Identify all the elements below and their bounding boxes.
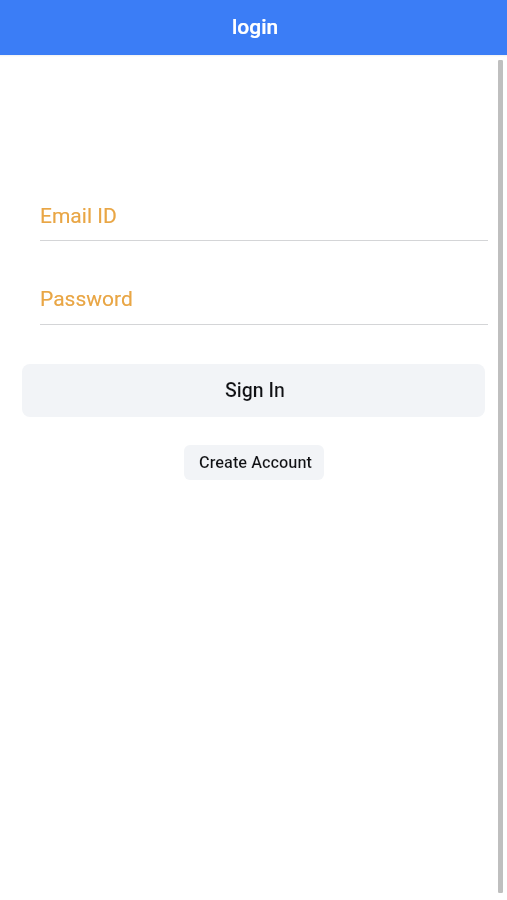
button[interactable]: Create Account bbox=[184, 445, 324, 480]
staticText: Password bbox=[40, 287, 133, 312]
staticText: Email ID bbox=[40, 204, 117, 229]
button[interactable]: Email ID input field bbox=[40, 204, 488, 241]
button[interactable]: Sign In bbox=[22, 364, 485, 417]
staticText: Sign In bbox=[225, 379, 285, 402]
staticText: Create Account bbox=[199, 453, 312, 472]
button[interactable]: Password input field bbox=[40, 287, 488, 325]
staticText: login bbox=[232, 15, 279, 40]
